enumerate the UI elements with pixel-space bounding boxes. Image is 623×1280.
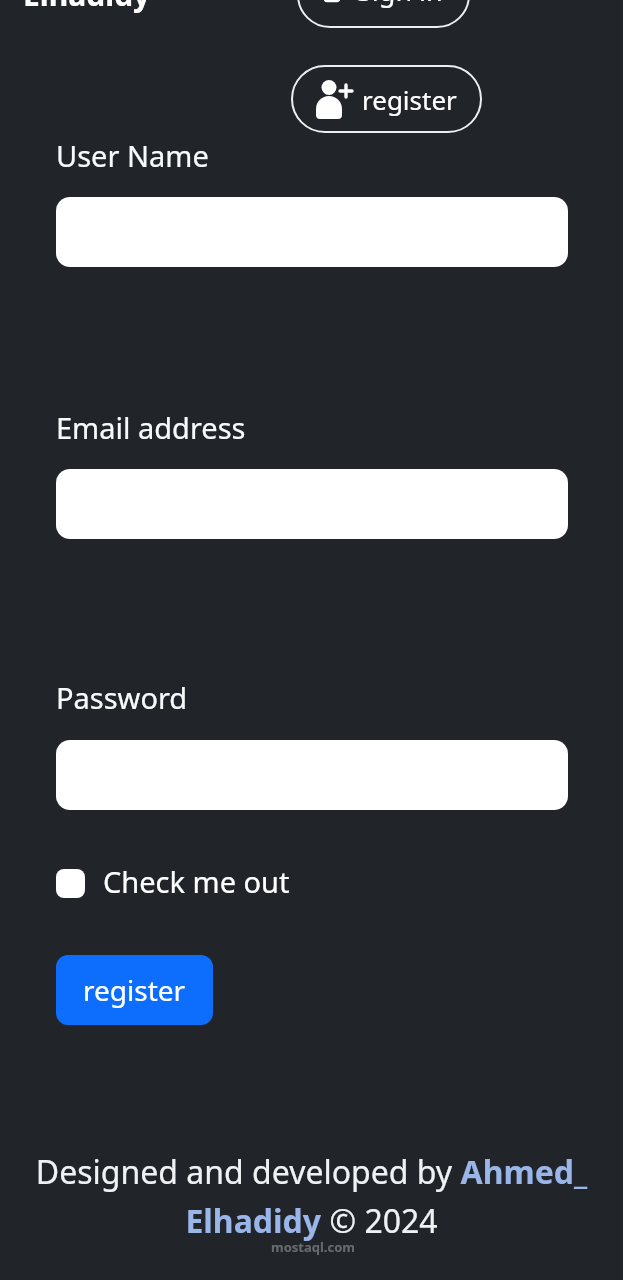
button[interactable]: Sign in — [297, 0, 470, 28]
staticText: mostaql.com — [271, 1238, 356, 1256]
staticText: register — [83, 971, 186, 1009]
staticText: Check me out — [103, 862, 290, 901]
staticText: Elhadidy — [23, 0, 151, 15]
staticText: register — [362, 82, 457, 117]
button[interactable]: register — [291, 65, 482, 133]
button[interactable] — [56, 869, 85, 898]
staticText: Designed and developed by Ahmed_ Elhadid… — [0, 1150, 623, 1242]
staticText: Sign in — [357, 0, 443, 9]
button[interactable] — [56, 740, 568, 810]
staticText: Password — [56, 678, 188, 717]
button[interactable] — [56, 469, 568, 539]
staticText: User Name — [56, 136, 209, 175]
staticText: Email address — [56, 408, 246, 447]
button[interactable] — [56, 197, 568, 267]
button[interactable]: register — [56, 955, 213, 1025]
